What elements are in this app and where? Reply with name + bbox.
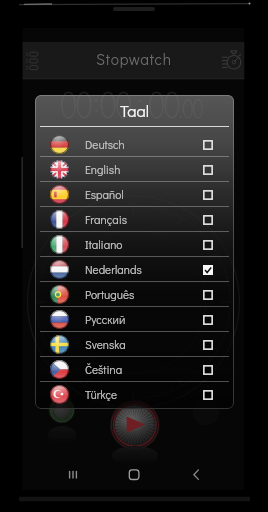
button[interactable]: Recent apps [41,461,103,488]
button[interactable]: Русский [35,307,234,332]
staticText: Čeština [85,362,123,377]
button[interactable]: Open navigation menu [23,44,51,77]
button[interactable]: Svenska [35,332,234,357]
button[interactable]: Português [35,282,234,307]
button[interactable]: English [35,157,234,182]
staticText: Stopwatch [96,49,172,69]
button[interactable]: Français [35,207,234,232]
staticText: Türkçe [85,387,118,402]
staticText: Español [85,187,124,202]
staticText: Taal [120,100,150,122]
button[interactable]: Home [103,461,165,488]
staticText: English [85,162,121,177]
staticText: Italiano [85,237,123,252]
staticText: Nederlands [85,262,142,277]
button[interactable]: Stopwatch [219,46,249,78]
button[interactable]: Español [35,182,234,207]
button[interactable]: Nederlands [35,257,234,282]
staticText: Français [85,212,128,227]
button[interactable]: Čeština [35,357,234,382]
button[interactable]: Italiano [35,232,234,257]
button[interactable]: Türkçe [35,382,234,407]
button[interactable]: Deutsch [35,132,234,157]
staticText: Deutsch [85,137,125,152]
staticText: Português [85,287,135,302]
button[interactable]: Back [165,461,227,488]
staticText: Svenska [85,337,126,352]
staticText: Русский [85,312,126,327]
